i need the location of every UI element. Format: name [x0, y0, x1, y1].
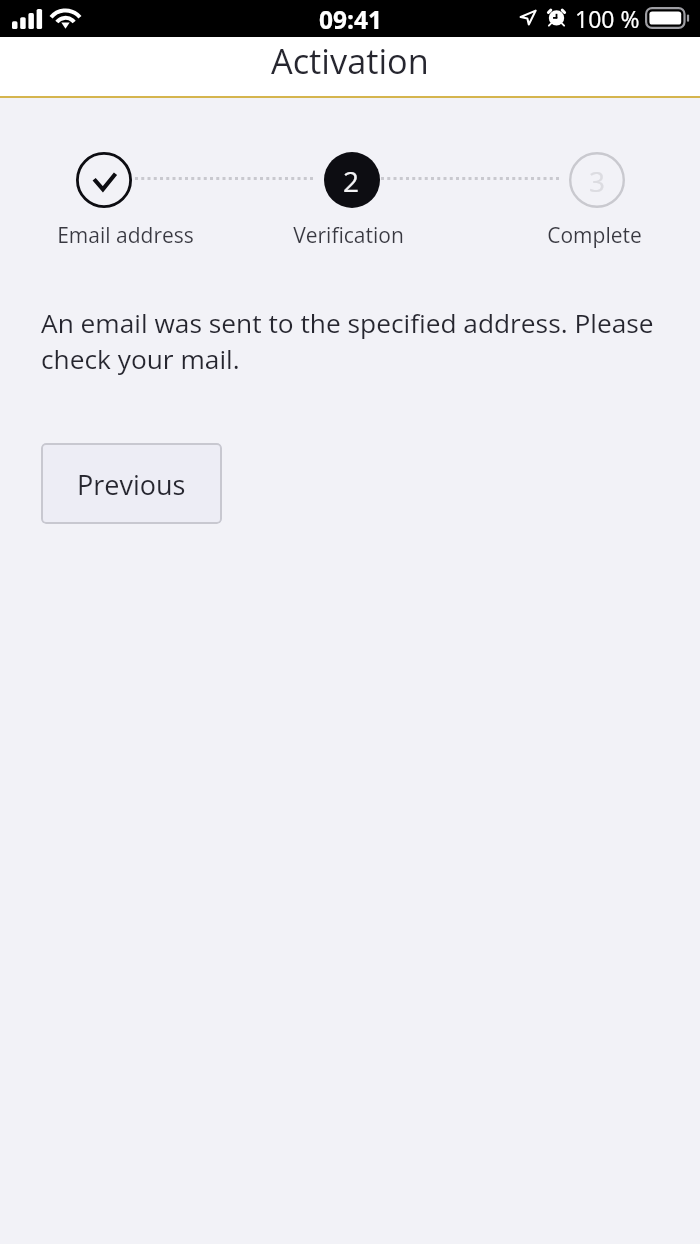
staticText: Activation — [271, 37, 429, 84]
other: Alarm — [547, 8, 566, 27]
button[interactable]: Step 2 current — [324, 152, 380, 208]
staticText: 09:41 — [319, 3, 383, 36]
button[interactable]: Email address — [15, 221, 235, 249]
staticText: Complete — [547, 221, 642, 249]
staticText: An email was sent to the specified addre… — [41, 305, 654, 376]
staticText: Verification — [293, 221, 404, 249]
staticText: 2 — [343, 162, 360, 200]
staticText: Email address — [57, 221, 194, 249]
other: Battery 100 percent — [645, 7, 690, 29]
button[interactable]: Previous — [41, 443, 222, 524]
staticText: 100 % — [575, 3, 640, 34]
other: Wi-Fi — [50, 8, 81, 29]
button[interactable]: Step 1 completed — [76, 152, 132, 208]
other: Location — [520, 10, 536, 25]
staticText: Previous — [77, 466, 186, 503]
other: Cellular signal — [12, 9, 43, 29]
button[interactable]: Complete — [484, 221, 700, 249]
button[interactable]: Step 3 pending — [569, 152, 625, 208]
button[interactable]: Verification — [238, 221, 458, 249]
staticText: 3 — [589, 162, 606, 200]
